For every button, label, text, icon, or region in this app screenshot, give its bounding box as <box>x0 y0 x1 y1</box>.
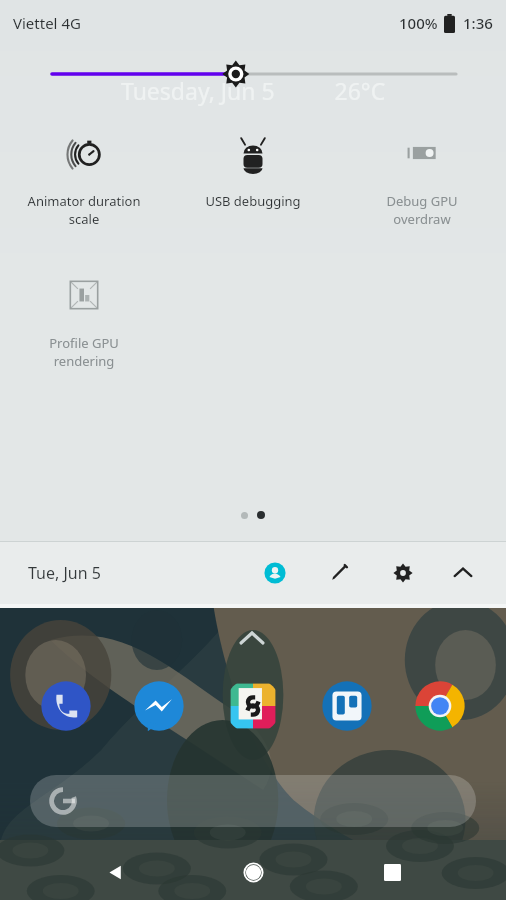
button[interactable]: USB debugging <box>168 126 337 214</box>
staticText: 100% <box>399 13 438 33</box>
staticText: 1:36 <box>463 13 493 33</box>
button[interactable]: Settings <box>386 556 420 590</box>
button[interactable]: Recents <box>368 848 416 896</box>
staticText: Tuesday, Jun 5 26°C <box>121 75 386 106</box>
button[interactable]: Profile GPU rendering <box>0 268 168 374</box>
button[interactable]: Slack <box>225 678 281 734</box>
button[interactable]: Brightness <box>0 46 506 108</box>
button[interactable]: Tue, Jun 5 <box>28 562 101 584</box>
button[interactable]: Phone <box>38 678 94 734</box>
button[interactable]: Edit <box>322 556 356 590</box>
button[interactable]: Search <box>30 775 476 827</box>
button[interactable]: Home <box>229 848 277 896</box>
button[interactable]: Chrome <box>412 678 468 734</box>
button[interactable]: Collapse <box>446 556 480 590</box>
button[interactable]: Back <box>91 848 139 896</box>
staticText: Animator duration scale <box>9 192 159 228</box>
button[interactable]: User <box>258 556 292 590</box>
staticText: Profile GPU rendering <box>9 334 159 370</box>
staticText: USB debugging <box>178 192 328 210</box>
button[interactable]: Messenger <box>131 678 187 734</box>
staticText: Tue, Jun 5 <box>28 562 101 584</box>
button[interactable]: Trello <box>319 678 375 734</box>
button[interactable]: Debug GPU overdraw <box>337 126 506 232</box>
staticText: Viettel 4G <box>13 13 81 33</box>
staticText: Debug GPU overdraw <box>347 192 497 228</box>
button[interactable]: Animator duration scale <box>0 126 168 232</box>
